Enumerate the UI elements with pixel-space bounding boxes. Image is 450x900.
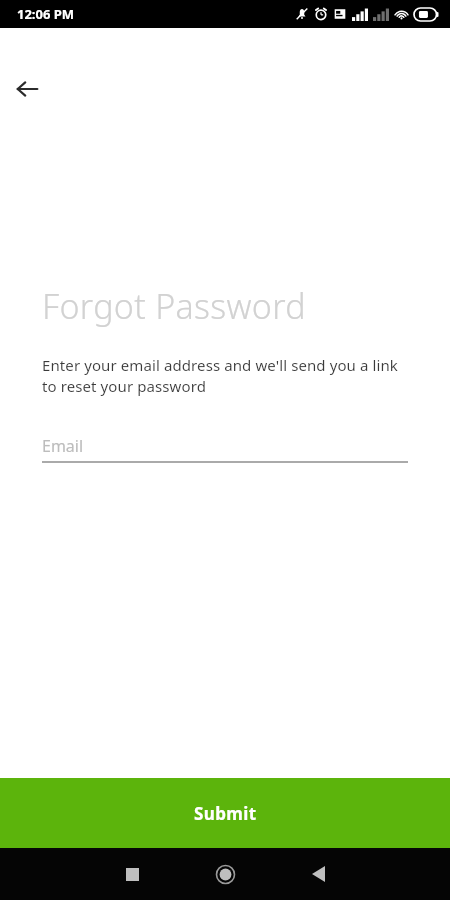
button[interactable]: Recent apps bbox=[110, 852, 154, 896]
button[interactable]: Submit bbox=[0, 778, 450, 848]
staticText: 12:06 PM bbox=[17, 5, 75, 23]
button[interactable]: Back bbox=[6, 68, 48, 110]
staticText: Enter your email address and we'll send … bbox=[42, 355, 408, 397]
staticText: Submit bbox=[194, 802, 257, 825]
button[interactable]: Back bbox=[296, 852, 340, 896]
staticText: Forgot Password bbox=[42, 283, 306, 329]
staticText: Email bbox=[42, 435, 84, 457]
button[interactable]: Home bbox=[202, 851, 248, 897]
button[interactable]: Email bbox=[42, 431, 408, 463]
